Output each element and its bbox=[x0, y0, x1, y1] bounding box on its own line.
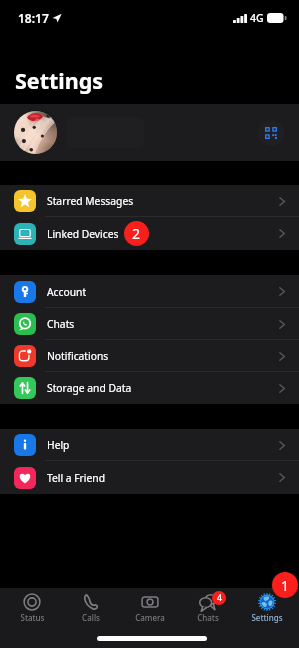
staticText: Storage and Data bbox=[47, 381, 132, 395]
button[interactable]: Settings bbox=[240, 588, 294, 628]
staticText: 4 bbox=[217, 592, 222, 604]
button[interactable]: Status bbox=[5, 588, 59, 628]
staticText: 1 bbox=[281, 576, 290, 595]
staticText: 2 bbox=[132, 224, 141, 243]
staticText: 4G bbox=[250, 11, 264, 25]
button[interactable]: Show QR code bbox=[258, 120, 284, 146]
staticText: Starred Messages bbox=[47, 194, 134, 208]
staticText: 18:17 bbox=[18, 10, 49, 26]
button[interactable]: Tell a Friend bbox=[0, 461, 299, 494]
staticText: Notifications bbox=[47, 349, 109, 363]
button[interactable]: Notifications bbox=[0, 340, 299, 372]
button[interactable]: 1 notification bbox=[272, 572, 298, 598]
staticText: Help bbox=[47, 438, 70, 452]
button[interactable]: Camera bbox=[123, 588, 177, 628]
button[interactable]: Calls bbox=[64, 588, 118, 628]
button[interactable]: Starred Messages bbox=[0, 185, 299, 217]
button[interactable]: Show QR code bbox=[0, 104, 299, 161]
button[interactable]: Help bbox=[0, 429, 299, 461]
staticText: Tell a Friend bbox=[47, 471, 106, 485]
staticText: Camera bbox=[135, 612, 165, 623]
button[interactable]: 4 bbox=[181, 588, 235, 628]
button[interactable]: Linked Devices bbox=[0, 217, 299, 250]
staticText: Chats bbox=[197, 612, 219, 623]
staticText: Status bbox=[20, 612, 45, 623]
button[interactable]: Account bbox=[0, 275, 299, 308]
staticText: Settings bbox=[251, 612, 283, 623]
button[interactable]: Storage and Data bbox=[0, 372, 299, 404]
button[interactable]: Chats bbox=[0, 308, 299, 340]
staticText: Settings bbox=[15, 66, 104, 95]
staticText: Linked Devices bbox=[47, 227, 119, 241]
staticText: Account bbox=[47, 285, 87, 299]
staticText: Chats bbox=[47, 317, 75, 331]
staticText: Calls bbox=[82, 612, 100, 623]
